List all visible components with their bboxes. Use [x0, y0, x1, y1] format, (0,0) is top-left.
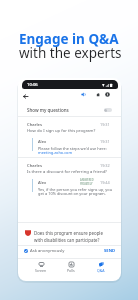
- staticText: How do I sign up for this program?: [27, 128, 96, 134]
- button[interactable]: Polls: [56, 259, 86, 281]
- staticText: Engage in Q&A: [19, 30, 119, 48]
- staticText: Q&A: [97, 268, 105, 273]
- button[interactable]: Raise hand: [93, 90, 102, 99]
- staticText: ANSWERED: [80, 178, 94, 181]
- staticText: SEND: [104, 248, 116, 254]
- staticText: Charles: [27, 163, 43, 169]
- staticText: 19:31: [100, 139, 110, 144]
- staticText: Does this program ensure people: [34, 230, 103, 236]
- button[interactable]: SEND: [102, 246, 118, 255]
- button[interactable]: Back: [20, 91, 30, 101]
- staticText: Screen: [35, 268, 47, 273]
- staticText: Polls: [67, 268, 75, 273]
- staticText: Alex: [38, 139, 47, 144]
- staticText: Show my questions: [27, 107, 69, 113]
- button[interactable]: Q&A: [86, 259, 116, 281]
- staticText: Yes, if the person you refer signs up, y…: [38, 187, 113, 192]
- staticText: Ask anonymously: [30, 248, 65, 254]
- staticText: with disabilities can participate?: [34, 237, 100, 243]
- staticText: with the experts: [19, 44, 122, 62]
- staticText: Alex: [38, 180, 47, 185]
- staticText: get a 10% discount on your program.: [38, 191, 106, 196]
- button[interactable]: Show my questions: [18, 103, 121, 116]
- button[interactable]: Screen: [26, 259, 56, 281]
- staticText: 19:32: [100, 163, 110, 168]
- staticText: 10:06: [27, 82, 38, 88]
- staticText: 19:44: [100, 180, 110, 185]
- staticText: Please follow the steps we'd use here:: [38, 146, 107, 151]
- button[interactable]: Audio: [79, 90, 88, 99]
- staticText: Is there a discount for referring a frie…: [27, 169, 107, 175]
- staticText: 19:31: [100, 122, 110, 127]
- button[interactable]: Info: [103, 90, 112, 99]
- button[interactable]: Ask anonymously: [24, 246, 65, 255]
- staticText: Charles: [27, 122, 43, 128]
- staticText: meeting.zoho.com: [38, 150, 73, 155]
- staticText: PRIVATELY: [80, 182, 93, 185]
